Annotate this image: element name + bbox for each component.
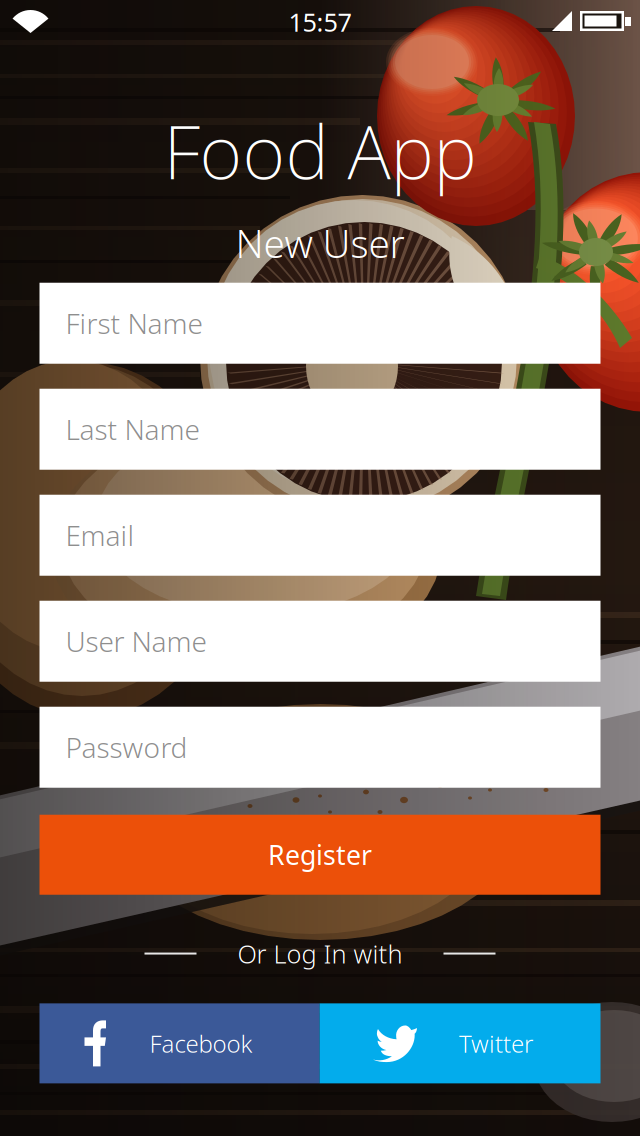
staticText: Register bbox=[268, 837, 372, 872]
button[interactable]: User Name bbox=[39, 601, 600, 682]
button[interactable]: First Name bbox=[39, 283, 600, 364]
staticText: Or Log In with bbox=[237, 937, 402, 970]
staticText: Twitter bbox=[459, 1027, 533, 1059]
staticText: User Name bbox=[65, 623, 206, 660]
staticText: Email bbox=[65, 517, 134, 554]
staticText: New User bbox=[235, 217, 404, 269]
button[interactable]: Twitter bbox=[319, 1003, 600, 1083]
staticText: Facebook bbox=[149, 1027, 252, 1059]
staticText: Food App bbox=[163, 102, 476, 199]
button[interactable]: Facebook bbox=[39, 1003, 319, 1083]
button[interactable]: Email bbox=[39, 495, 600, 576]
button[interactable]: Password bbox=[39, 707, 600, 788]
button[interactable]: Last Name bbox=[39, 389, 600, 470]
staticText: Last Name bbox=[65, 411, 199, 448]
staticText: 15:57 bbox=[288, 5, 351, 39]
staticText: Password bbox=[65, 729, 187, 766]
button[interactable]: Register bbox=[39, 815, 600, 895]
staticText: First Name bbox=[65, 305, 202, 342]
